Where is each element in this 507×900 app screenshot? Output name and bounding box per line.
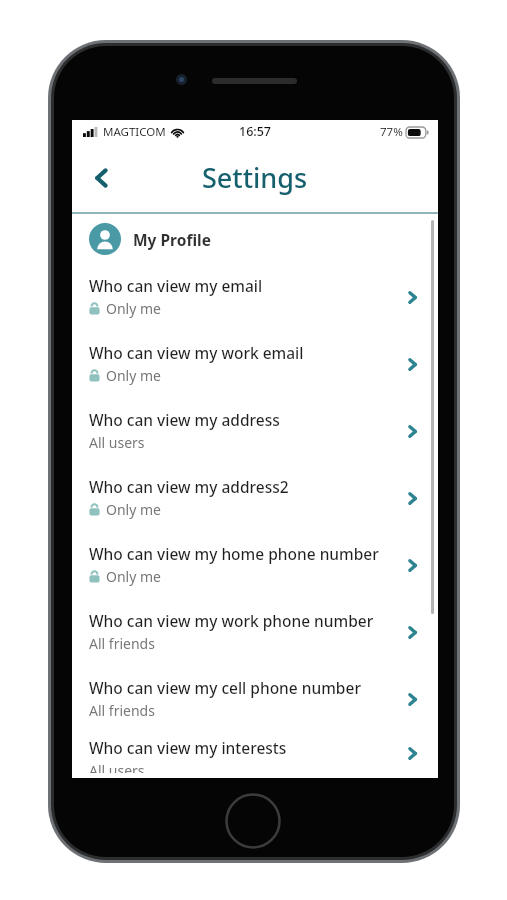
staticText: All friends bbox=[89, 634, 155, 653]
button[interactable]: Who can view my address bbox=[72, 398, 438, 465]
button[interactable]: Who can view my interests bbox=[72, 733, 438, 773]
staticText: Settings bbox=[202, 159, 308, 196]
staticText: Who can view my work phone number bbox=[89, 610, 374, 631]
button[interactable]: Who can view my cell phone number bbox=[72, 666, 438, 733]
button[interactable]: My Profile bbox=[72, 214, 438, 264]
staticText: Who can view my interests bbox=[89, 737, 287, 758]
staticText: Who can view my address2 bbox=[89, 476, 289, 497]
button[interactable]: Who can view my work phone number bbox=[72, 599, 438, 666]
staticText: Only me bbox=[106, 500, 161, 519]
button[interactable]: Who can view my address2 bbox=[72, 465, 438, 532]
staticText: My Profile bbox=[133, 229, 211, 250]
staticText: MAGTICOM bbox=[103, 124, 166, 140]
staticText: Only me bbox=[106, 366, 161, 385]
staticText: Only me bbox=[106, 299, 161, 318]
staticText: Who can view my work email bbox=[89, 342, 304, 363]
staticText: All users bbox=[89, 433, 145, 452]
staticText: Who can view my email bbox=[89, 275, 263, 296]
staticText: All friends bbox=[89, 701, 155, 720]
staticText: Who can view my home phone number bbox=[89, 543, 379, 564]
button[interactable]: Who can view my email bbox=[72, 264, 438, 331]
staticText: 16:57 bbox=[239, 123, 272, 140]
staticText: Who can view my cell phone number bbox=[89, 677, 361, 698]
button[interactable]: Back bbox=[80, 156, 124, 200]
staticText: All users bbox=[89, 761, 145, 773]
button[interactable]: Who can view my work email bbox=[72, 331, 438, 398]
staticText: Only me bbox=[106, 567, 161, 586]
button[interactable]: Who can view my home phone number bbox=[72, 532, 438, 599]
staticText: Who can view my address bbox=[89, 409, 280, 430]
staticText: 77% bbox=[380, 124, 403, 140]
